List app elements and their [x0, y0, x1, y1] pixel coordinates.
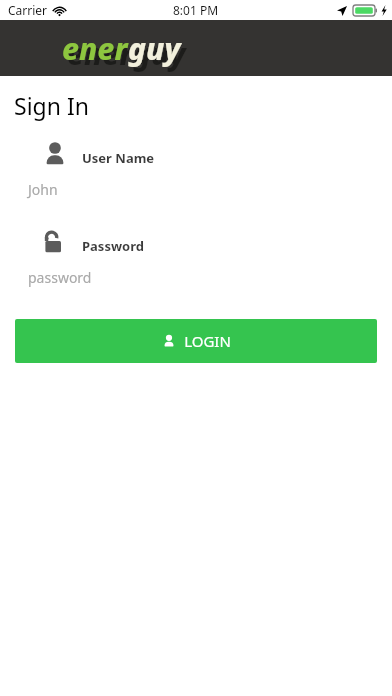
button[interactable]: LOGIN	[15, 319, 377, 363]
staticText: 8:01 PM	[173, 2, 219, 18]
staticText: guy	[128, 28, 181, 69]
staticText: guy	[133, 33, 186, 74]
button[interactable]: John	[28, 177, 364, 201]
staticText: password	[28, 268, 92, 287]
staticText: Sign In	[14, 90, 89, 121]
staticText: Password	[82, 237, 144, 255]
staticText: User Name	[82, 149, 155, 167]
staticText: LOGIN	[184, 331, 231, 351]
button[interactable]: password	[28, 265, 364, 289]
staticText: Carrier	[8, 2, 48, 18]
staticText: ener	[62, 28, 128, 69]
staticText: ener	[67, 33, 133, 74]
staticText: John	[28, 180, 58, 199]
